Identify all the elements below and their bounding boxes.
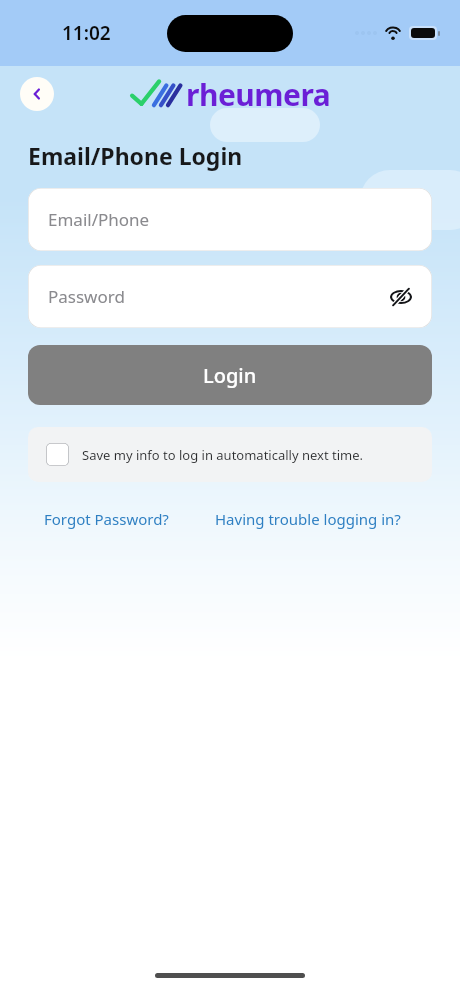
- button[interactable]: Password: [28, 265, 432, 328]
- staticText: Email/Phone Login: [28, 140, 243, 171]
- staticText: Email/Phone: [48, 208, 150, 231]
- button[interactable]: Having trouble logging in?: [213, 503, 403, 535]
- staticText: Forgot Password?: [44, 509, 169, 529]
- staticText: Having trouble logging in?: [215, 509, 401, 529]
- button[interactable]: Back: [20, 77, 54, 111]
- staticText: Password: [48, 285, 125, 308]
- button[interactable]: Forgot Password?: [28, 503, 185, 535]
- button[interactable]: Save my info to log in automatically nex…: [28, 427, 432, 482]
- staticText: Login: [203, 362, 257, 389]
- button[interactable]: Login: [28, 345, 432, 405]
- staticText: rheumera: [186, 74, 331, 115]
- button[interactable]: Show password: [384, 280, 418, 314]
- staticText: 11:02: [62, 20, 111, 46]
- staticText: Save my info to log in automatically nex…: [82, 446, 364, 464]
- button[interactable]: Email/Phone: [28, 188, 432, 251]
